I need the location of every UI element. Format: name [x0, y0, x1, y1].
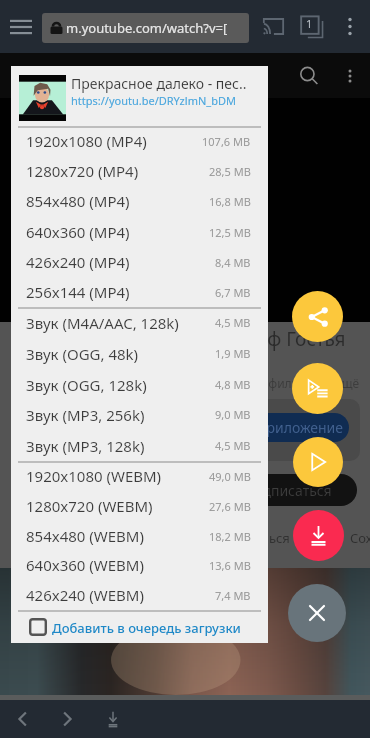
staticText: кинофильмы ещё: [240, 375, 360, 391]
staticText: 4,8 MB: [215, 377, 251, 392]
staticText: 1280x720 (WEBM): [26, 496, 209, 516]
staticText: 426x240 (WEBM): [26, 585, 215, 605]
staticText: m.youtube.com/watch?v=[: [66, 19, 228, 37]
staticText: 8,4 MB: [215, 255, 251, 270]
button[interactable]: Close: [288, 584, 346, 642]
button[interactable]: 1280x720 (MP4): [11, 156, 268, 186]
staticText: Сохр: [350, 529, 370, 547]
button[interactable]: 1280x720 (WEBM): [11, 491, 268, 521]
button[interactable]: Звук (OGG, 128k): [11, 369, 268, 400]
button[interactable]: Cast: [255, 0, 291, 53]
staticText: 107,6 MB: [202, 134, 251, 149]
staticText: 12,5 MB: [209, 225, 251, 240]
staticText: 640x360 (MP4): [26, 222, 209, 242]
staticText: 18,2 MB: [209, 529, 251, 544]
staticText: Прекрасное далеко - пес..: [71, 74, 247, 93]
staticText: 9,0 MB: [215, 407, 251, 422]
staticText: 6,7 MB: [215, 285, 251, 300]
button[interactable]: Tabs: [293, 0, 329, 53]
staticText: 1920x1080 (MP4): [26, 131, 202, 151]
button[interactable]: m.youtube.com/watch?v=[: [42, 13, 249, 43]
staticText: Звук (OGG, 48k): [26, 344, 215, 364]
button[interactable]: Back: [2, 700, 44, 738]
staticText: 27,6 MB: [209, 499, 251, 514]
staticText: 426x240 (MP4): [26, 252, 215, 272]
staticText: 1,9 MB: [215, 346, 251, 361]
staticText: Звук (M4A/AAC, 128k): [26, 313, 215, 333]
staticText: 49,0 MB: [209, 469, 251, 484]
staticText: ься: [269, 529, 290, 547]
button[interactable]: Звук (MP3, 128k): [11, 430, 268, 461]
button[interactable]: приложение: [205, 413, 349, 442]
staticText: Х/ф Гостья: [249, 326, 346, 352]
button[interactable]: Play: [293, 437, 343, 487]
button[interactable]: Share: [292, 291, 343, 342]
button[interactable]: Добавить в очередь загрузки: [11, 610, 268, 643]
staticText: Звук (OGG, 128k): [26, 375, 215, 395]
staticText: 640x360 (WEBM): [26, 555, 209, 575]
button[interactable]: More options: [333, 0, 367, 53]
staticText: 7,4 MB: [215, 588, 251, 603]
staticText: 4,5 MB: [215, 438, 251, 453]
staticText: Звук (MP3, 128k): [26, 436, 215, 456]
button[interactable]: Прекрасное далеко - пес..: [11, 66, 268, 126]
staticText: 1: [306, 16, 313, 31]
button[interactable]: 256x144 (MP4): [11, 277, 268, 307]
staticText: приложение: [258, 418, 344, 437]
button[interactable]: 1920x1080 (MP4): [11, 126, 268, 156]
button[interactable]: 854x480 (WEBM): [11, 521, 268, 551]
staticText: 1280x720 (MP4): [26, 161, 209, 181]
staticText: 28,5 MB: [209, 164, 251, 179]
button[interactable]: Search: [288, 53, 330, 98]
staticText: 256x144 (MP4): [26, 282, 215, 302]
button[interactable]: Downloads: [92, 700, 134, 738]
button[interactable]: Menu: [0, 0, 42, 53]
button[interactable]: 426x240 (MP4): [11, 247, 268, 277]
button[interactable]: Forward: [46, 700, 88, 738]
button[interactable]: Звук (M4A/AAC, 128k): [11, 307, 268, 338]
button[interactable]: Add to playlist: [292, 363, 343, 414]
button[interactable]: 1920x1080 (WEBM): [11, 461, 268, 491]
button[interactable]: 640x360 (MP4): [11, 217, 268, 247]
button[interactable]: Подписаться: [196, 474, 357, 506]
button[interactable]: 640x360 (WEBM): [11, 550, 268, 580]
button[interactable]: Account menu: [330, 53, 370, 98]
staticText: Добавить в очередь загрузки: [52, 619, 241, 637]
staticText: Подписаться: [244, 481, 332, 500]
staticText: Звук (MP3, 256k): [26, 405, 215, 425]
staticText: 4,5 MB: [215, 315, 251, 330]
staticText: 854x480 (MP4): [26, 191, 209, 211]
button[interactable]: Звук (OGG, 48k): [11, 338, 268, 369]
button[interactable]: 426x240 (WEBM): [11, 580, 268, 610]
staticText: 854x480 (WEBM): [26, 526, 209, 546]
staticText: https://youtu.be/DRYzlmN_bDM: [71, 93, 236, 108]
button[interactable]: Download: [293, 510, 344, 561]
staticText: 16,8 MB: [209, 194, 251, 209]
button[interactable]: 854x480 (MP4): [11, 186, 268, 216]
button[interactable]: Звук (MP3, 256k): [11, 399, 268, 430]
staticText: 1920x1080 (WEBM): [26, 466, 209, 486]
staticText: 13,6 MB: [209, 558, 251, 573]
